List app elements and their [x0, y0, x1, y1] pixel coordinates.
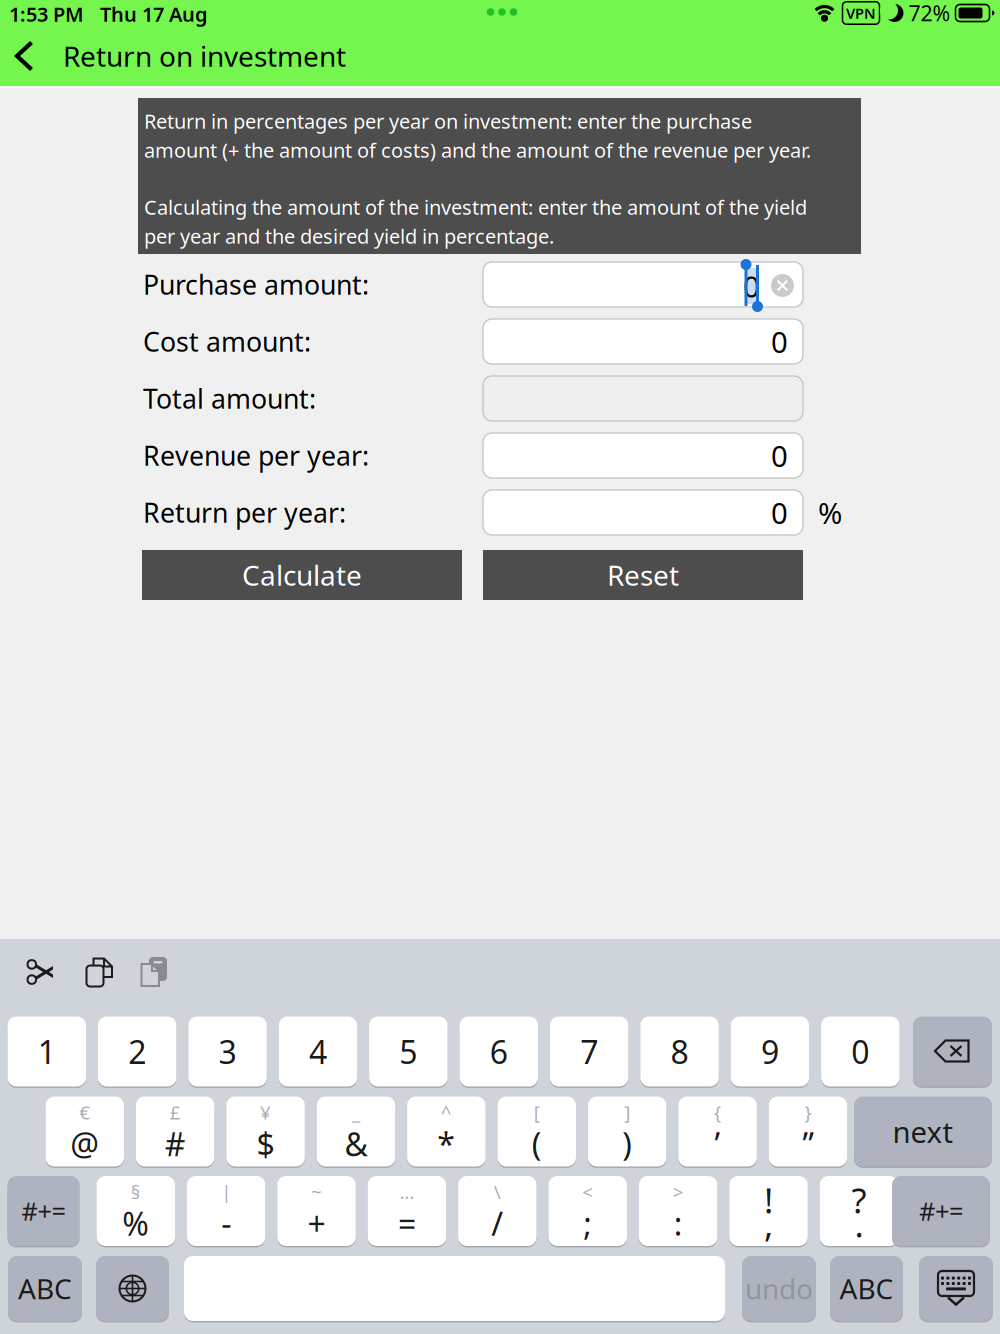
button[interactable]: 7 — [550, 1016, 628, 1086]
staticText: ABC — [839, 1270, 893, 1307]
staticText: 72% — [908, 0, 950, 27]
staticText: § — [131, 1179, 141, 1204]
staticText: amount (+ the amount of costs) and the a… — [144, 137, 811, 163]
button[interactable]: 0 — [821, 1016, 900, 1086]
staticText: VPN — [846, 3, 876, 23]
staticText: Revenue per year: — [143, 438, 369, 473]
staticText: Return per year: — [143, 495, 346, 530]
button[interactable]: #+= — [892, 1176, 990, 1246]
staticText: * — [437, 1123, 455, 1165]
staticText: 0 — [851, 1030, 869, 1073]
button[interactable]: Revenue per year — [483, 433, 803, 478]
staticText: { — [714, 1100, 721, 1125]
button[interactable]: 3 — [188, 1016, 267, 1086]
button[interactable]: Total amount — [483, 376, 803, 421]
button[interactable]: ? — [820, 1176, 898, 1246]
button[interactable]: 9 — [731, 1016, 809, 1086]
button[interactable]: Return per year — [483, 490, 803, 535]
button[interactable]: … — [368, 1176, 446, 1246]
staticText: > — [673, 1179, 684, 1204]
button[interactable]: ABC — [830, 1256, 903, 1321]
button[interactable]: £ — [136, 1096, 214, 1166]
button[interactable]: Delete — [913, 1016, 992, 1086]
button[interactable]: € — [45, 1096, 124, 1166]
button[interactable]: Purchase amount — [483, 262, 803, 307]
button[interactable]: 4 — [279, 1016, 357, 1086]
staticText: - — [221, 1202, 231, 1245]
staticText: } — [804, 1100, 811, 1125]
button[interactable]: Dismiss keyboard — [919, 1256, 993, 1321]
button[interactable]: Calculate — [142, 550, 462, 600]
button[interactable]: 6 — [459, 1016, 538, 1086]
button[interactable]: #+= — [7, 1176, 79, 1246]
staticText: 1 — [38, 1030, 56, 1073]
button[interactable]: ~ — [277, 1176, 356, 1246]
button[interactable]: next — [854, 1096, 992, 1166]
button[interactable]: ¥ — [226, 1096, 305, 1166]
staticText: £ — [170, 1100, 181, 1125]
button[interactable]: Copy — [85, 956, 115, 988]
staticText: 0 — [771, 322, 788, 361]
button[interactable]: undo — [742, 1256, 816, 1321]
button[interactable]: | — [187, 1176, 265, 1246]
staticText: 5 — [399, 1030, 417, 1073]
staticText: / — [491, 1202, 503, 1245]
button[interactable]: _ — [317, 1096, 395, 1166]
button[interactable]: 1 — [7, 1016, 86, 1086]
button[interactable]: } — [769, 1096, 847, 1166]
staticText: next — [892, 1112, 953, 1151]
button[interactable]: ABC — [8, 1256, 82, 1321]
staticText: ( — [532, 1123, 542, 1165]
staticText: ! — [764, 1177, 773, 1223]
button[interactable]: Back — [0, 32, 48, 80]
staticText: € — [79, 1100, 90, 1125]
button[interactable]: Cut — [26, 957, 56, 987]
button[interactable]: 5 — [369, 1016, 448, 1086]
staticText: Total amount: — [143, 381, 316, 416]
button[interactable]: \ — [458, 1176, 537, 1246]
staticText: @ — [70, 1123, 99, 1165]
staticText: . — [854, 1201, 863, 1247]
button[interactable]: < — [548, 1176, 627, 1246]
staticText: ” — [802, 1123, 813, 1165]
button[interactable]: Clear text — [771, 274, 794, 297]
staticText: ¥ — [260, 1100, 271, 1125]
staticText: , — [764, 1201, 773, 1247]
button[interactable]: Cost amount — [483, 319, 803, 364]
staticText: Return on investment — [63, 37, 346, 75]
staticText: 9 — [761, 1030, 779, 1073]
staticText: 3 — [219, 1030, 237, 1073]
staticText: 2 — [128, 1030, 146, 1073]
staticText: 0 — [771, 436, 788, 475]
button[interactable]: > — [639, 1176, 717, 1246]
staticText: + — [308, 1202, 326, 1245]
staticText: $ — [257, 1123, 275, 1165]
staticText: ^ — [441, 1100, 452, 1125]
staticText: 8 — [671, 1030, 689, 1073]
button[interactable]: { — [678, 1096, 757, 1166]
button[interactable]: ^ — [407, 1096, 486, 1166]
staticText: Reset — [607, 556, 679, 594]
staticText: #+= — [919, 1194, 963, 1228]
button[interactable]: 8 — [640, 1016, 719, 1086]
staticText: ) — [622, 1123, 632, 1165]
button[interactable]: Next keyboard — [96, 1256, 169, 1321]
staticText: ; — [583, 1202, 592, 1245]
button[interactable]: Reset — [483, 550, 803, 600]
button[interactable]: § — [96, 1176, 175, 1246]
staticText: ABC — [18, 1270, 72, 1307]
button[interactable]: Paste — [140, 956, 170, 988]
button[interactable]: ! — [729, 1176, 808, 1246]
staticText: 1:53 PM — [9, 1, 84, 27]
staticText: % — [122, 1202, 149, 1245]
button[interactable]: 2 — [98, 1016, 176, 1086]
staticText: Purchase amount: — [143, 267, 369, 302]
staticText: Thu 17 Aug — [100, 1, 208, 27]
button[interactable]: ] — [588, 1096, 666, 1166]
staticText: ] — [624, 1100, 630, 1125]
button[interactable]: [ — [497, 1096, 576, 1166]
staticText: ’ — [715, 1123, 721, 1165]
staticText: _ — [352, 1100, 360, 1125]
staticText: undo — [745, 1270, 813, 1307]
